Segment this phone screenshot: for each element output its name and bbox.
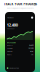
staticText: Floors xyxy=(7,54,12,56)
staticText: THIS WEEK xyxy=(7,17,14,18)
button[interactable]: Floors xyxy=(7,53,33,56)
staticText: 12,480 xyxy=(7,22,18,27)
staticText: TRACK YOUR PROGRESS xyxy=(3,2,36,6)
staticText: Distance xyxy=(7,44,13,46)
staticText: 642 xyxy=(30,51,33,52)
staticText: BREAKDOWN xyxy=(7,42,16,44)
staticText: 14 xyxy=(31,54,33,56)
button[interactable]: Calories xyxy=(7,50,33,53)
staticText: 8.4 km xyxy=(29,44,33,46)
button[interactable]: Active time xyxy=(7,47,33,50)
button[interactable]: Profile xyxy=(31,16,33,19)
button[interactable]: Distance xyxy=(7,44,33,47)
staticText: Every rep, every run, every record. xyxy=(6,7,33,9)
staticText: 1h 12m xyxy=(28,47,33,49)
staticText: steps today xyxy=(7,28,15,30)
staticText: Calories xyxy=(7,51,13,52)
staticText: Goal reached xyxy=(9,67,19,69)
staticText: Active time xyxy=(7,47,13,49)
